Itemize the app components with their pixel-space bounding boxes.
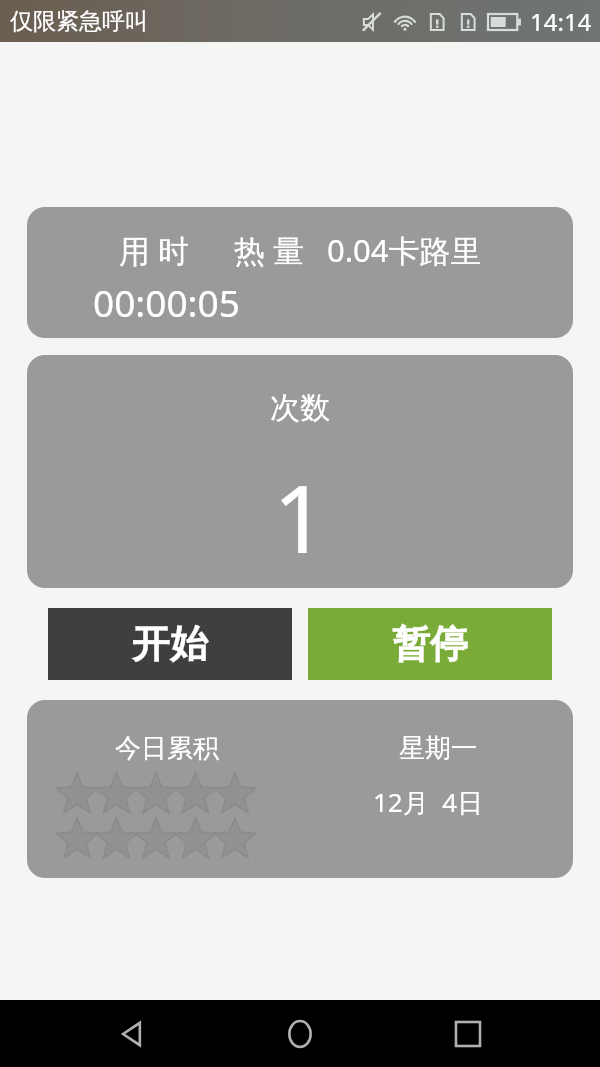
staticText: 14:14: [530, 5, 592, 38]
staticText: 暂停: [392, 620, 468, 668]
button[interactable]: Home: [264, 1000, 336, 1067]
staticText: 12月 4日: [373, 784, 484, 820]
button[interactable]: 次数: [27, 355, 573, 588]
staticText: 开始: [132, 620, 208, 668]
staticText: 星期一: [399, 732, 477, 765]
staticText: 仅限紧急呼叫: [10, 7, 148, 36]
staticText: 今日累积: [115, 732, 219, 765]
staticText: 00:00:05: [93, 277, 240, 327]
staticText: 次数: [27, 389, 573, 427]
button[interactable]: 用 时: [27, 207, 573, 338]
staticText: 热 量: [234, 229, 305, 271]
button[interactable]: 开始: [48, 608, 292, 680]
staticText: 0.04卡路里: [327, 229, 482, 271]
button[interactable]: Recents: [432, 1000, 504, 1067]
button[interactable]: 暂停: [308, 608, 552, 680]
button[interactable]: Back: [96, 1000, 168, 1067]
staticText: 1: [27, 453, 573, 581]
staticText: 用 时: [119, 229, 190, 271]
button[interactable]: 今日累积: [27, 700, 573, 878]
